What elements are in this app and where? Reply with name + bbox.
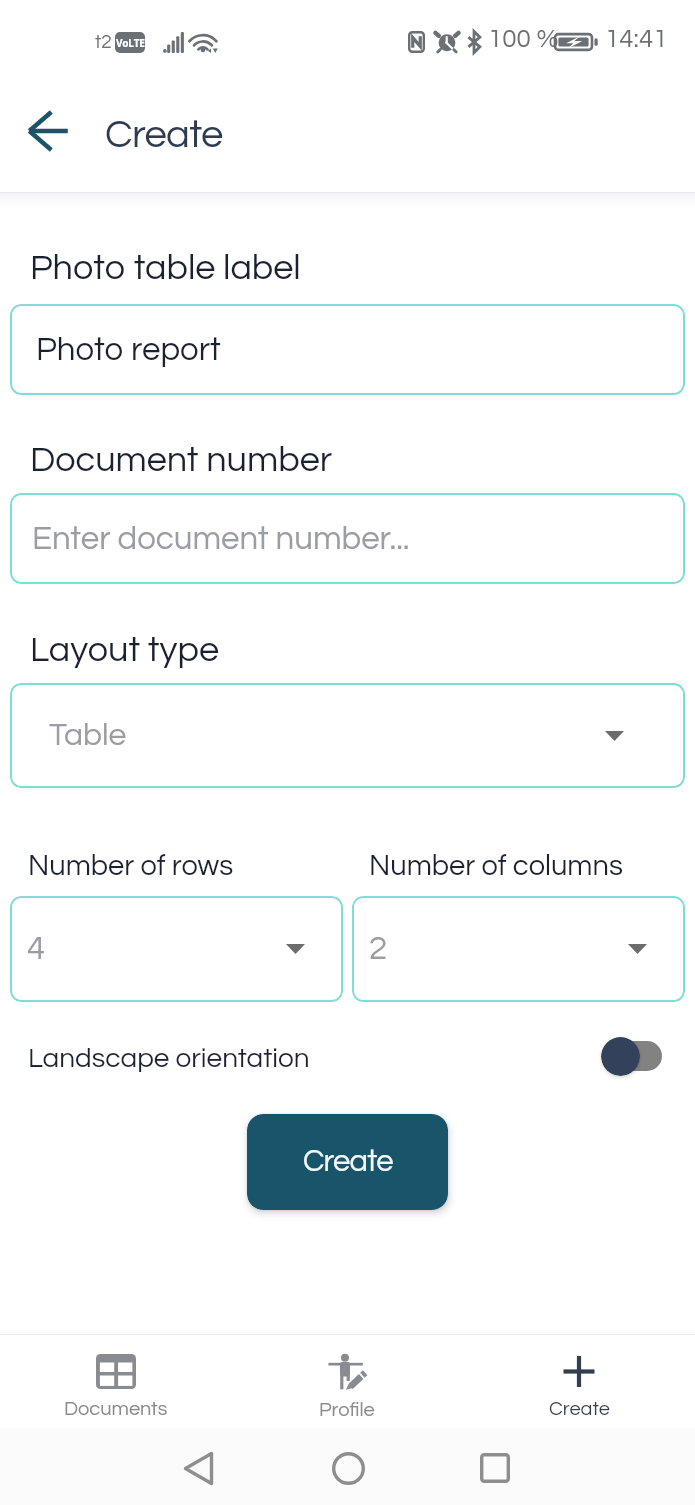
staticText: 2 <box>369 932 388 966</box>
staticText: Create <box>549 1399 610 1420</box>
staticText: Number of rows <box>28 851 234 881</box>
staticText: Create <box>105 114 223 155</box>
button[interactable]: Recents <box>460 1433 530 1503</box>
staticText: Table <box>49 719 127 752</box>
button[interactable]: Photo report <box>10 304 685 395</box>
staticText: Photo table label <box>30 249 301 286</box>
staticText: Layout type <box>30 631 219 668</box>
staticText: Create <box>303 1146 393 1178</box>
button[interactable]: Enter document number... <box>10 493 685 584</box>
button[interactable]: Create <box>463 1335 695 1420</box>
staticText: 4 <box>27 932 46 966</box>
button[interactable]: Documents <box>0 1335 231 1420</box>
staticText: t2 <box>95 32 112 52</box>
button[interactable]: Profile <box>231 1335 463 1421</box>
button[interactable]: Home <box>313 1433 383 1503</box>
button[interactable]: Back <box>163 1433 233 1503</box>
staticText: Landscape orientation <box>28 1044 310 1073</box>
button[interactable]: Table <box>10 683 685 788</box>
staticText: VoLTE <box>116 36 145 50</box>
staticText: Profile <box>319 1400 375 1421</box>
staticText: 100 % <box>488 26 559 53</box>
staticText: 14:41 <box>605 26 668 53</box>
button[interactable]: Create <box>247 1114 448 1210</box>
button[interactable]: Back <box>14 101 84 161</box>
staticText: Document number <box>30 441 333 478</box>
staticText: Enter document number... <box>32 522 410 556</box>
button[interactable]: 4 <box>10 896 343 1002</box>
staticText: Number of columns <box>369 851 623 881</box>
button[interactable]: 2 <box>352 896 685 1002</box>
staticText: Documents <box>64 1399 168 1420</box>
staticText: Photo report <box>36 333 221 367</box>
button[interactable]: Landscape orientation <box>0 1030 695 1084</box>
